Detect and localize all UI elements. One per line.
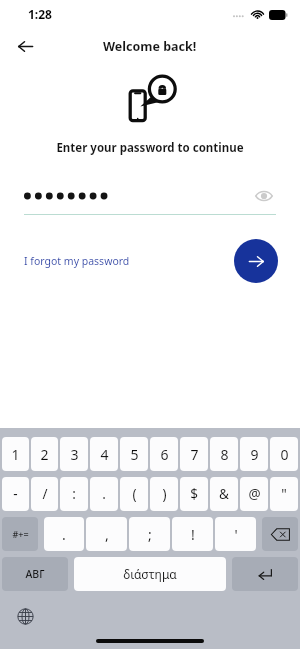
staticText: 0 — [280, 445, 289, 464]
button[interactable]: Backspace — [262, 517, 298, 551]
button[interactable]: 9 — [240, 437, 268, 471]
staticText: 7 — [190, 445, 199, 464]
button[interactable]: ' — [215, 517, 256, 551]
button[interactable]: : — [60, 477, 88, 511]
staticText: : — [72, 485, 76, 503]
button[interactable]: / — [31, 477, 58, 511]
staticText: @ — [248, 485, 261, 503]
button[interactable]: 3 — [60, 437, 88, 471]
button[interactable]: - — [2, 477, 29, 511]
staticText: 4 — [100, 445, 109, 464]
button[interactable]: , — [86, 517, 127, 551]
staticText: ( — [132, 485, 137, 503]
button[interactable]: $ — [180, 477, 208, 511]
button[interactable]: Return — [232, 557, 298, 591]
staticText: . — [102, 485, 106, 503]
staticText: / — [42, 485, 48, 503]
staticText: 8 — [220, 445, 229, 464]
button[interactable]: 1 — [2, 437, 29, 471]
staticText: , — [105, 525, 109, 544]
button[interactable]: Back — [8, 29, 42, 63]
button[interactable]: " — [270, 477, 298, 511]
staticText: 1 — [11, 445, 20, 464]
button[interactable]: ΑΒΓ — [2, 557, 68, 591]
staticText: " — [281, 485, 287, 503]
button[interactable]: 8 — [210, 437, 238, 471]
staticText: 3 — [70, 445, 79, 464]
button[interactable]: ; — [129, 517, 170, 551]
staticText: ! — [191, 525, 195, 544]
button[interactable]: ! — [172, 517, 213, 551]
button[interactable]: & — [210, 477, 238, 511]
button[interactable]: ( — [120, 477, 148, 511]
staticText: I forgot my password — [24, 254, 130, 268]
staticText: $ — [190, 485, 198, 503]
button[interactable]: @ — [240, 477, 268, 511]
button[interactable]: διάστημα — [74, 557, 226, 591]
staticText: #+= — [12, 528, 29, 540]
button[interactable]: #+= — [2, 517, 38, 551]
staticText: 5 — [130, 445, 139, 464]
staticText: Welcome back! — [103, 38, 197, 55]
staticText: 1:28 — [28, 6, 52, 22]
button[interactable]: 6 — [150, 437, 178, 471]
button[interactable]: ) — [150, 477, 178, 511]
button[interactable]: . — [44, 517, 84, 551]
staticText: & — [219, 485, 229, 503]
button[interactable]: Show password — [252, 184, 276, 208]
staticText: ' — [234, 525, 238, 544]
button[interactable]: . — [90, 477, 118, 511]
staticText: 2 — [40, 445, 49, 464]
button[interactable]: 7 — [180, 437, 208, 471]
button[interactable]: 5 — [120, 437, 148, 471]
staticText: ΑΒΓ — [25, 567, 45, 581]
staticText: . — [62, 525, 66, 544]
staticText: διάστημα — [123, 566, 177, 582]
staticText: Enter your password to continue — [0, 140, 300, 156]
staticText: ) — [162, 485, 167, 503]
staticText: 6 — [160, 445, 169, 464]
staticText: - — [13, 485, 18, 503]
button[interactable]: 4 — [90, 437, 118, 471]
button[interactable]: 0 — [270, 437, 298, 471]
staticText: ; — [148, 525, 152, 544]
button[interactable]: 2 — [31, 437, 58, 471]
staticText: 9 — [250, 445, 259, 464]
button[interactable]: I forgot my password — [24, 254, 130, 268]
button[interactable]: Change keyboard — [10, 601, 40, 631]
button[interactable]: Continue — [234, 239, 278, 283]
